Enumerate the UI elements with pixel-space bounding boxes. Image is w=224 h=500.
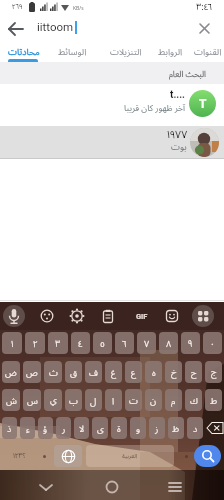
staticText: t....	[170, 89, 186, 101]
button[interactable]: العربية	[86, 445, 174, 467]
button[interactable]: ف	[85, 361, 102, 383]
staticText: ٧	[144, 337, 150, 349]
button[interactable]: ٠	[203, 332, 222, 354]
button[interactable]: ع	[125, 361, 142, 383]
button[interactable]: ء	[20, 417, 35, 439]
button[interactable]: ٩	[181, 332, 200, 354]
button[interactable]: الروابط	[154, 43, 186, 59]
staticText: و	[136, 422, 141, 434]
button[interactable]: ٣	[48, 332, 68, 354]
button[interactable]: ح	[185, 361, 202, 383]
button[interactable]: التنزيلات	[108, 43, 144, 59]
button[interactable]	[38, 480, 54, 494]
staticText: ٨	[166, 337, 172, 349]
button[interactable]	[192, 305, 214, 327]
button[interactable]	[4, 16, 30, 42]
button[interactable]	[39, 308, 55, 324]
staticText: ء	[26, 422, 30, 434]
button[interactable]: ؟١٢٣	[4, 445, 34, 467]
button[interactable]	[100, 308, 116, 324]
button[interactable]: ٧	[137, 332, 156, 354]
button[interactable]	[34, 445, 54, 467]
staticText: ؟١٢٣	[13, 451, 26, 461]
button[interactable]	[194, 445, 221, 467]
staticText: ر	[62, 422, 66, 434]
button[interactable]: ص	[23, 361, 41, 383]
button[interactable]: ة	[111, 417, 127, 439]
button[interactable]: ل	[85, 389, 102, 411]
staticText: بوت	[171, 140, 187, 152]
staticText: محادثات	[8, 45, 40, 57]
button[interactable]: س	[23, 389, 41, 411]
button[interactable]: ث	[44, 361, 62, 383]
button[interactable]	[0, 126, 224, 159]
button[interactable]	[206, 417, 222, 439]
button[interactable]	[196, 20, 214, 38]
button[interactable]	[69, 308, 85, 324]
staticText: ط	[210, 394, 218, 406]
button[interactable]: ر	[56, 417, 71, 439]
staticText: القنوات	[194, 45, 222, 57]
button[interactable]: ض	[2, 361, 20, 383]
button[interactable]: ظ	[168, 417, 184, 439]
staticText: ش	[6, 394, 17, 406]
staticText: ؤ	[43, 422, 48, 434]
staticText: iittoom	[37, 20, 74, 33]
staticText: T	[199, 97, 207, 111]
button[interactable]	[105, 480, 119, 494]
button[interactable]	[54, 445, 82, 467]
button[interactable]: ط	[205, 389, 222, 411]
button[interactable]: ى	[92, 417, 108, 439]
button[interactable]: ١	[2, 332, 22, 354]
button[interactable]: GIF	[130, 305, 154, 327]
staticText: الروابط	[158, 45, 183, 57]
staticText: ق	[70, 366, 77, 378]
button[interactable]: ب	[65, 389, 82, 411]
staticText: ز	[155, 422, 159, 434]
staticText: التنزيلات	[110, 45, 142, 57]
button[interactable]: الوسائط	[56, 43, 88, 59]
staticText: البحث العام	[169, 68, 206, 79]
button[interactable]: القنوات	[192, 43, 224, 59]
button[interactable]: ه	[145, 361, 162, 383]
staticText: س	[27, 394, 38, 406]
button[interactable]: ٤	[71, 332, 90, 354]
button[interactable]: غ	[105, 361, 122, 383]
button[interactable]: ٦	[115, 332, 134, 354]
button[interactable]: د	[187, 417, 203, 439]
staticText: العربية	[122, 452, 138, 460]
button[interactable]	[0, 84, 224, 126]
staticText: لا	[79, 422, 85, 434]
button[interactable]	[178, 445, 194, 467]
button[interactable]: لا	[74, 417, 89, 439]
button[interactable]: ا	[105, 389, 122, 411]
button[interactable]: ن	[145, 389, 162, 411]
button[interactable]: ج	[205, 361, 222, 383]
staticText: ٦	[122, 337, 127, 349]
staticText: ك	[190, 394, 198, 406]
button[interactable]: ز	[149, 417, 165, 439]
button[interactable]	[168, 481, 182, 493]
staticText: KB/s	[73, 5, 84, 12]
button[interactable]: ي	[44, 389, 62, 411]
button[interactable]	[164, 308, 180, 324]
staticText: ١٩٧٧	[167, 127, 188, 141]
button[interactable]: ٨	[159, 332, 178, 354]
button[interactable]: ٢	[25, 332, 45, 354]
staticText: ٥	[100, 337, 105, 349]
staticText: ٣:٤٦	[196, 0, 213, 12]
button[interactable]: ٥	[93, 332, 112, 354]
button[interactable]: م	[165, 389, 182, 411]
button[interactable]: ك	[185, 389, 202, 411]
staticText: ج	[211, 366, 217, 378]
button[interactable]: ذ	[2, 417, 17, 439]
staticText: م	[171, 394, 176, 406]
button[interactable]: محادثات	[8, 43, 40, 59]
button[interactable]: ؤ	[38, 417, 53, 439]
button[interactable]: و	[130, 417, 146, 439]
button[interactable]: ش	[2, 389, 20, 411]
staticText: ت	[129, 394, 138, 406]
button[interactable]: ق	[65, 361, 82, 383]
button[interactable]: خ	[165, 361, 182, 383]
button[interactable]: ت	[125, 389, 142, 411]
